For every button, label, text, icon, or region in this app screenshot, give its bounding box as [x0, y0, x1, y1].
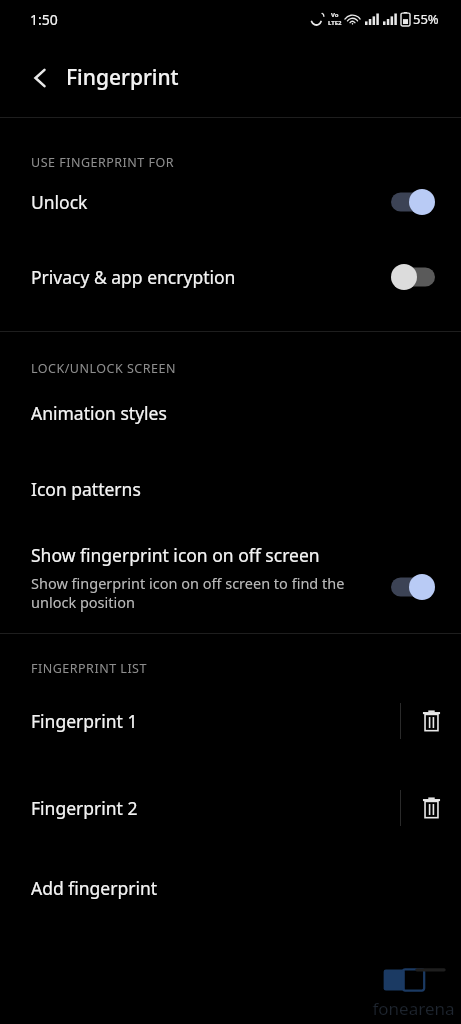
staticText: Fingerprint 1	[31, 709, 138, 733]
staticText: Fingerprint 2	[31, 796, 138, 820]
staticText: 55%	[413, 10, 439, 28]
button[interactable]: Fingerprint 2	[0, 764, 400, 851]
button[interactable]: Unlock	[0, 171, 461, 233]
staticText: 1:50	[30, 10, 58, 29]
staticText: USE FINGERPRINT FOR	[31, 154, 175, 171]
staticText: Fingerprint	[66, 63, 179, 92]
button[interactable]: Icon patterns	[0, 449, 461, 529]
staticText: LTE2	[328, 19, 342, 27]
button[interactable]: Delete Fingerprint 2	[401, 764, 461, 851]
staticText: Vo	[331, 11, 339, 19]
staticText: Privacy & app encryption	[31, 265, 391, 289]
button[interactable]: Fingerprint 1	[0, 677, 400, 764]
staticText: LOCK/UNLOCK SCREEN	[31, 360, 176, 377]
button[interactable]: Back	[18, 56, 62, 100]
button[interactable]: Add fingerprint	[0, 851, 461, 925]
staticText: Unlock	[31, 190, 391, 214]
staticText: Animation styles	[31, 401, 167, 425]
staticText: FINGERPRINT LIST	[31, 660, 147, 677]
staticText: Show fingerprint icon on off screen to f…	[31, 573, 373, 612]
button[interactable]: Show fingerprint icon on off screen	[0, 529, 461, 625]
staticText: Add fingerprint	[31, 876, 158, 900]
staticText: fonearena	[372, 997, 455, 1020]
button[interactable]: Delete Fingerprint 1	[401, 677, 461, 764]
staticText: Show fingerprint icon on off screen	[31, 543, 320, 567]
button[interactable]: Animation styles	[0, 377, 461, 449]
button[interactable]: Privacy & app encryption	[0, 233, 461, 321]
staticText: Icon patterns	[31, 477, 141, 501]
